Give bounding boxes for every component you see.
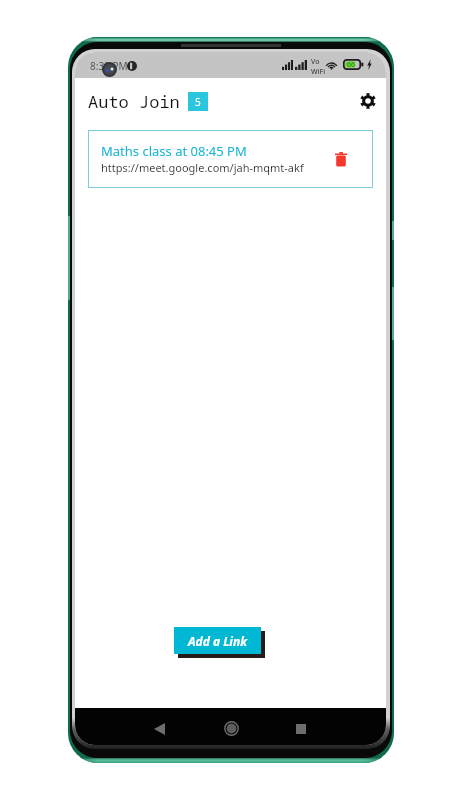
staticText: Maths class at 08:45 PM	[101, 142, 247, 160]
staticText: WiFi	[311, 67, 326, 77]
button[interactable]: Maths class at 08:45 PM	[88, 130, 373, 188]
staticText: Vo	[311, 57, 320, 67]
button[interactable]: Recents	[281, 710, 321, 745]
button[interactable]: Back	[139, 710, 179, 745]
button[interactable]: Home	[211, 710, 251, 745]
staticText: 8:39 PM	[90, 59, 128, 73]
staticText: Auto Join	[88, 90, 180, 113]
button[interactable]: Add a Link	[174, 627, 261, 654]
staticText: https://meet.google.com/jah-mqmt-akf	[101, 160, 304, 175]
button[interactable]: Delete	[329, 147, 353, 171]
staticText: Add a Link	[188, 633, 248, 649]
button[interactable]: Settings	[354, 87, 382, 115]
staticText: 5	[195, 95, 201, 109]
staticText: 66	[347, 60, 356, 70]
